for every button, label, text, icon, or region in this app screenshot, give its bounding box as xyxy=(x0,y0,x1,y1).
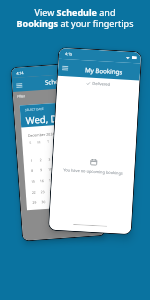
staticText: Delivered xyxy=(92,81,110,87)
staticText: 17 xyxy=(49,177,53,183)
staticText: 31 xyxy=(50,198,55,204)
staticText: 23 xyxy=(41,189,45,194)
staticText: 2 xyxy=(39,157,42,162)
staticText: Wed, Dec 4 xyxy=(25,111,76,127)
button[interactable]: Delivered xyxy=(86,80,110,87)
staticText: 14 xyxy=(88,164,92,169)
staticText: My Bookings xyxy=(85,65,123,75)
staticText: 24 xyxy=(50,188,54,194)
staticText: 12 xyxy=(68,165,72,170)
staticText: 9 xyxy=(40,167,42,172)
staticText: Schedule xyxy=(45,77,71,87)
staticText: T xyxy=(47,139,49,143)
staticText: SELECT DATE xyxy=(25,107,44,112)
staticText: You have no upcoming bookings xyxy=(63,167,123,176)
staticText: 1 xyxy=(30,158,33,163)
staticText: 16 xyxy=(40,178,44,183)
staticText: 15 xyxy=(31,179,35,184)
staticText: View Schedule and Bookings at your finge… xyxy=(0,6,150,30)
staticText: December 2024 xyxy=(28,131,55,138)
staticText: M xyxy=(37,139,40,143)
staticText: 4:14 xyxy=(16,70,25,76)
staticText: S xyxy=(29,140,31,144)
staticText: 4:15 xyxy=(65,51,73,57)
staticText: 29 xyxy=(32,200,37,205)
staticText: 22 xyxy=(32,190,36,195)
staticText: Filter xyxy=(17,93,26,99)
staticText: 8 xyxy=(31,168,33,173)
button[interactable]: Menu xyxy=(14,80,24,90)
staticText: 30 xyxy=(41,199,46,204)
staticText: 3 xyxy=(48,156,51,162)
button[interactable]: Menu xyxy=(60,63,70,73)
staticText: 10 xyxy=(48,166,52,172)
